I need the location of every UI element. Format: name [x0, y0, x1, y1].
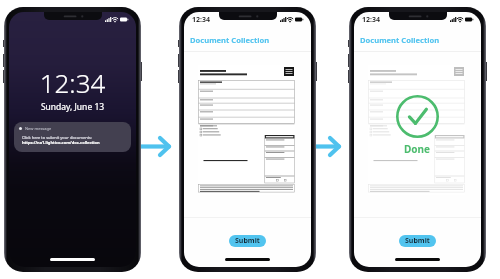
button[interactable]: New message — [14, 122, 131, 152]
staticText: Submit — [235, 236, 260, 246]
staticText: Submit — [405, 236, 430, 246]
button[interactable]: Submit — [399, 235, 436, 247]
staticText: 12:34 — [362, 15, 380, 25]
staticText: 12:34 — [9, 65, 136, 100]
staticText: Click here to submit your documents: — [22, 135, 93, 140]
staticText: Document Collection — [190, 35, 270, 45]
staticText: 12:34 — [192, 15, 210, 25]
button[interactable]: Submit — [229, 235, 266, 247]
staticText: Sunday, June 13 — [9, 101, 136, 113]
staticText: https://na1.lightico.com/doc-collection — [22, 140, 100, 145]
staticText: Document Collection — [360, 35, 440, 45]
staticText: New message — [25, 126, 52, 131]
staticText: Done — [404, 142, 431, 156]
